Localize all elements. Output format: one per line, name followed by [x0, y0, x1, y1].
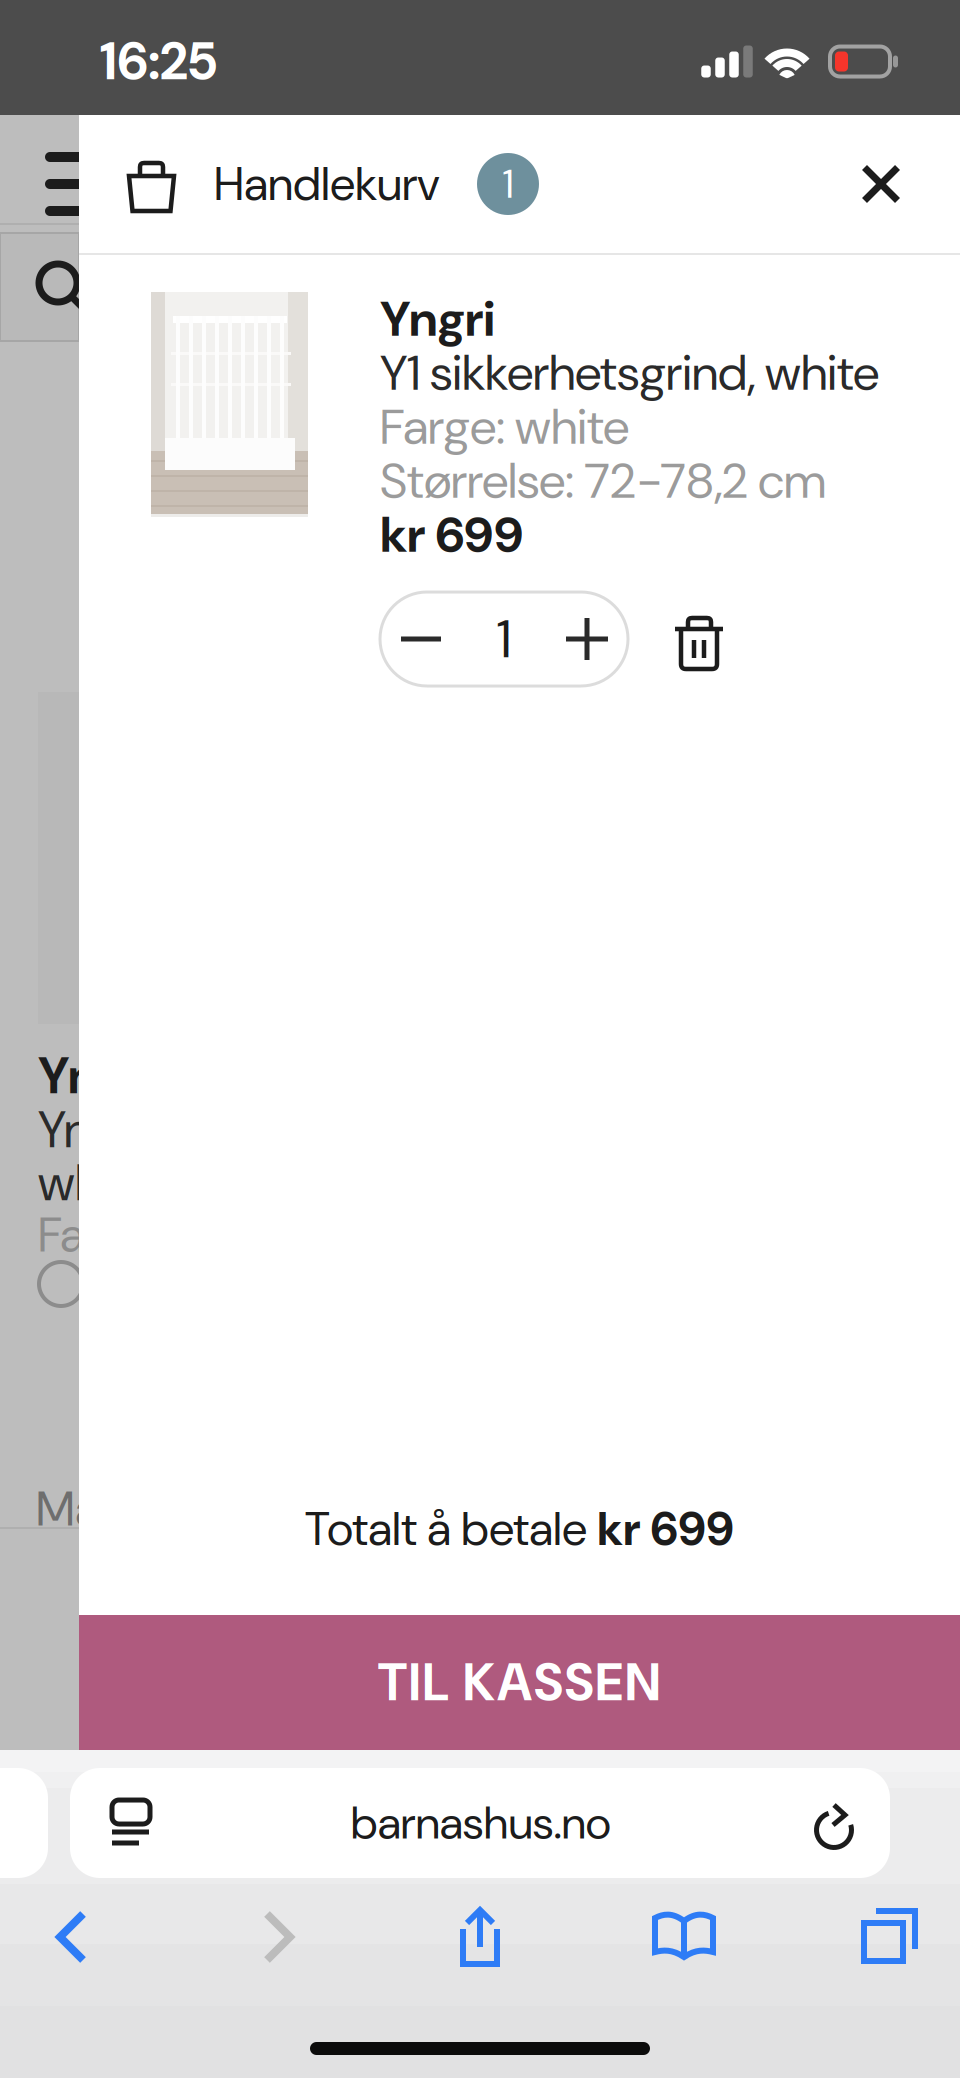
staticText: Yngri [380, 287, 495, 351]
button[interactable]: Bokmerker [546, 1900, 822, 1974]
staticText: Mate [36, 1478, 141, 1540]
staticText: kr 699 [597, 1499, 734, 1559]
button[interactable]: Reduser antall [380, 592, 462, 686]
button[interactable]: Del [414, 1900, 546, 1974]
staticText: Farge [38, 1204, 151, 1266]
staticText: barnashus.no [350, 1793, 611, 1852]
staticText: white [38, 1150, 155, 1216]
button[interactable]: Tilbake [0, 1900, 144, 1974]
button[interactable]: Faner [822, 1900, 960, 1974]
button[interactable]: Lukk handlekurv [845, 148, 917, 220]
button[interactable]: Øk antall [546, 592, 628, 686]
staticText: kr 699 [380, 503, 524, 567]
button[interactable]: Fremover [144, 1900, 414, 1974]
button[interactable]: Fjern varen [656, 592, 742, 686]
staticText: Y1 sikkerhetsgrind, white [380, 341, 879, 405]
staticText: Størrelse: 72-78,2 cm [380, 449, 826, 513]
staticText: 1 [497, 604, 511, 674]
button[interactable]: TIL KASSEN [79, 1615, 960, 1750]
staticText: Yngri Y1 [38, 1097, 197, 1163]
button[interactable]: barnashus.no [0, 1768, 890, 1878]
staticText: Farge: white [380, 395, 629, 459]
staticText: 1 [502, 158, 513, 210]
staticText: Handlekurv [214, 154, 440, 214]
staticText: Totalt å betale [305, 1499, 597, 1559]
staticText: Yngri [38, 1043, 157, 1109]
staticText: TIL KASSEN [378, 1649, 661, 1716]
staticText: 16:25 [100, 28, 217, 95]
